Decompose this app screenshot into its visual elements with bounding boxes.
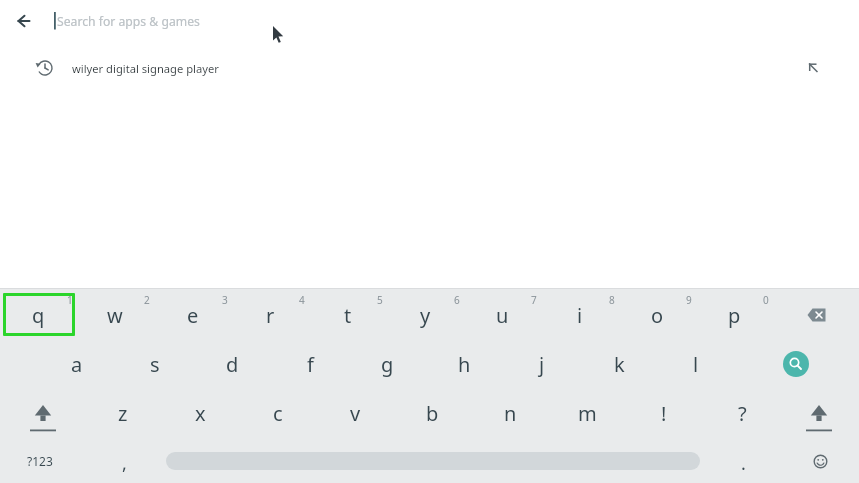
staticText: e (187, 302, 199, 329)
staticText: ? (738, 400, 747, 427)
staticText: . (741, 451, 746, 476)
button[interactable]: ? (707, 391, 777, 435)
staticText: 1 (67, 293, 73, 307)
button[interactable]: p (699, 293, 769, 337)
button[interactable]: x (165, 391, 235, 435)
staticText: b (426, 400, 439, 427)
staticText: 9 (686, 293, 692, 307)
button[interactable]: h (429, 342, 499, 386)
button[interactable]: wilyer digital signage player (0, 52, 859, 84)
staticText: d (226, 351, 239, 378)
staticText: o (651, 302, 664, 329)
staticText: m (578, 400, 597, 427)
button[interactable]: c (243, 391, 313, 435)
staticText: i (577, 302, 583, 329)
button[interactable]: d (197, 342, 267, 386)
button[interactable]: . (708, 441, 778, 483)
staticText: 6 (454, 293, 460, 307)
staticText: r (266, 302, 275, 329)
staticText: v (350, 400, 361, 427)
button[interactable] (784, 399, 854, 445)
staticText: Search for apps & games (57, 13, 200, 30)
staticText: g (381, 351, 394, 378)
staticText: 5 (377, 293, 383, 307)
staticText: y (420, 302, 431, 329)
staticText: 4 (299, 293, 305, 307)
button[interactable]: q (3, 293, 73, 337)
button[interactable]: j (507, 342, 577, 386)
button[interactable]: r (235, 293, 305, 337)
staticText: u (496, 302, 509, 329)
staticText: w (107, 302, 123, 329)
staticText: z (118, 400, 128, 427)
staticText: n (504, 400, 517, 427)
button[interactable]: u (467, 293, 537, 337)
staticText: q (32, 302, 45, 329)
staticText: l (693, 351, 699, 378)
staticText: 3 (222, 293, 228, 307)
button[interactable]: g (352, 342, 422, 386)
staticText: j (539, 351, 545, 378)
staticText: f (307, 351, 314, 378)
button[interactable]: l (661, 342, 731, 386)
button[interactable]: ?123 (5, 439, 75, 483)
staticText: s (150, 351, 160, 378)
button[interactable]: s (120, 342, 190, 386)
button[interactable]: o (622, 293, 692, 337)
staticText: 2 (144, 293, 150, 307)
staticText: a (71, 351, 83, 378)
button[interactable]: b (397, 391, 467, 435)
staticText: wilyer digital signage player (72, 61, 219, 76)
staticText: 8 (609, 293, 615, 307)
button[interactable]: f (275, 342, 345, 386)
button[interactable]: z (88, 391, 158, 435)
button[interactable]: ! (629, 391, 699, 435)
staticText: h (458, 351, 471, 378)
button[interactable] (783, 351, 809, 377)
staticText: p (728, 302, 741, 329)
staticText: 0 (763, 293, 769, 307)
button[interactable]: w (80, 293, 150, 337)
button[interactable] (8, 5, 40, 37)
staticText: x (195, 400, 206, 427)
button[interactable] (8, 399, 78, 445)
staticText: 7 (531, 293, 537, 307)
staticText: k (614, 351, 625, 378)
button[interactable]: k (584, 342, 654, 386)
button[interactable]: , (89, 441, 159, 483)
staticText: t (344, 302, 352, 329)
button[interactable] (785, 439, 855, 483)
staticText: ?123 (27, 453, 53, 469)
button[interactable]: i (545, 293, 615, 337)
button[interactable]: n (475, 391, 545, 435)
button[interactable] (782, 293, 852, 337)
button[interactable]: a (42, 342, 112, 386)
button[interactable]: v (320, 391, 390, 435)
button[interactable]: t (313, 293, 383, 337)
staticText: c (273, 400, 283, 427)
button[interactable]: e (158, 293, 228, 337)
button[interactable]: m (552, 391, 622, 435)
staticText: ! (661, 400, 667, 427)
button[interactable]: y (390, 293, 460, 337)
staticText: , (122, 451, 127, 476)
